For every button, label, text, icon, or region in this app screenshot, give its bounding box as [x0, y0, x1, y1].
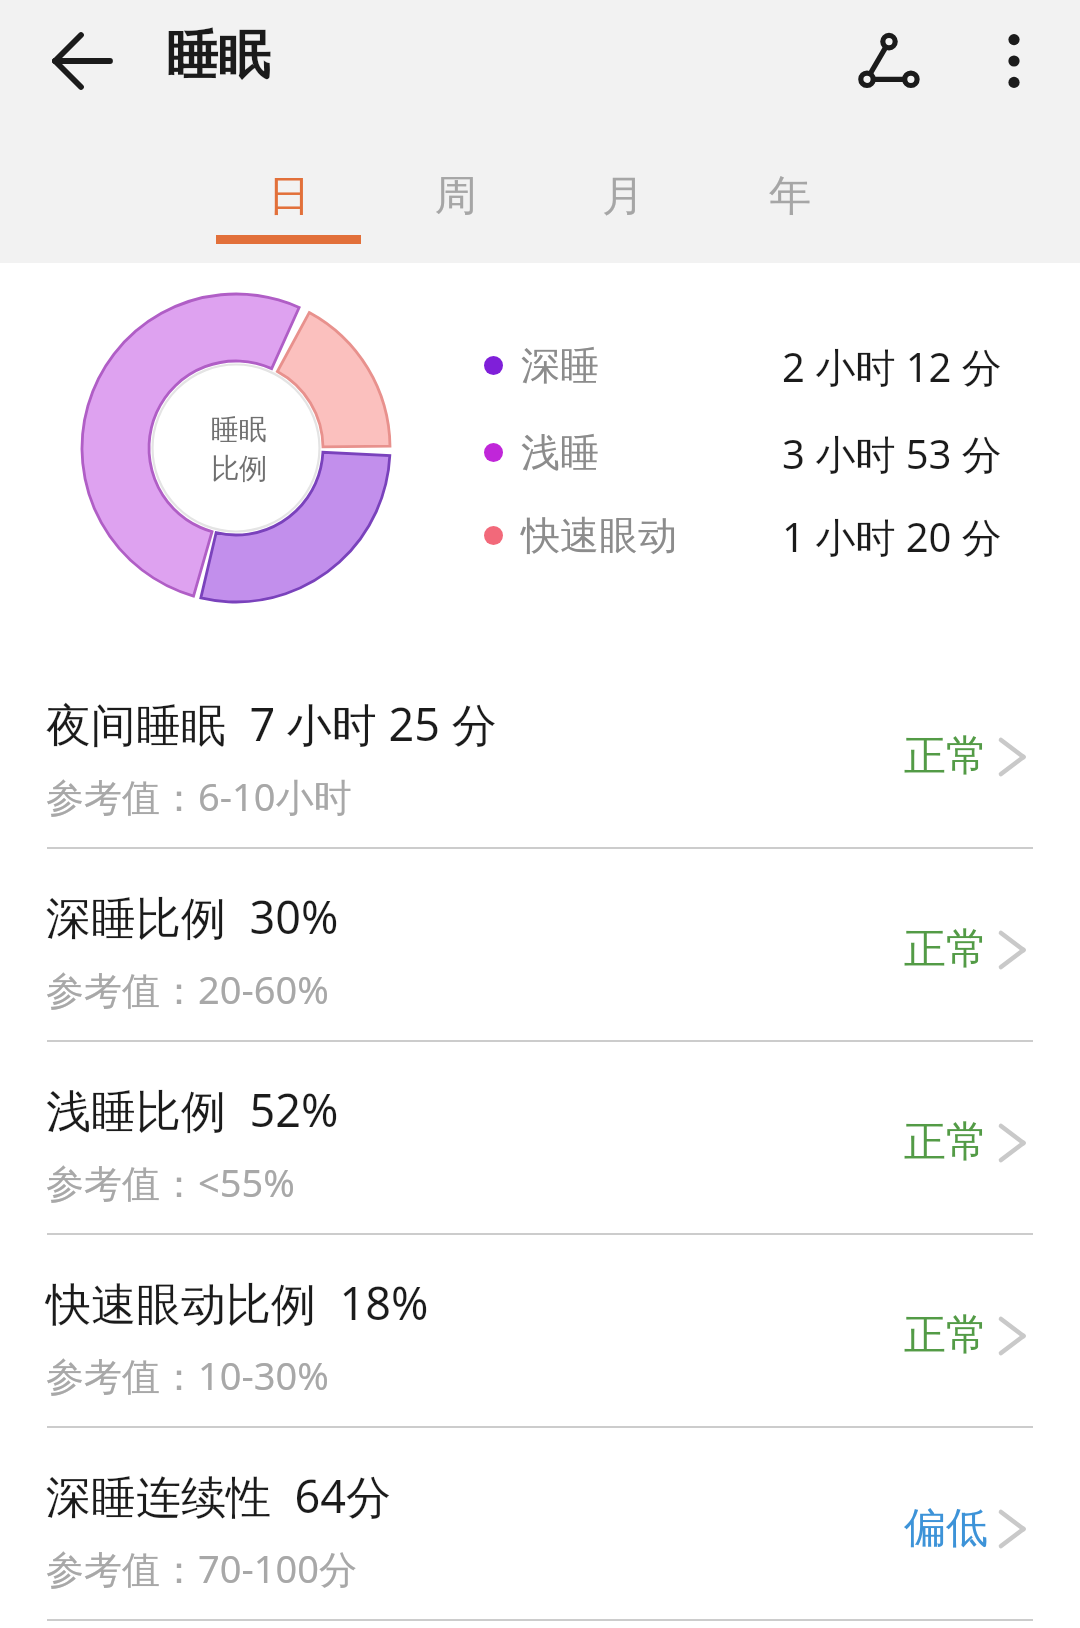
staticText: 正常 [904, 923, 988, 976]
staticText: 睡眠 [211, 412, 267, 447]
button[interactable]: Share [835, 9, 939, 113]
staticText: 3 小时 53 分 [782, 426, 1002, 481]
staticText: 浅睡比例 52% [46, 1079, 339, 1140]
staticText: 快速眼动比例 18% [46, 1272, 429, 1333]
button[interactable]: 深睡比例 30% [0, 849, 1080, 1042]
button[interactable]: 日 [205, 122, 372, 263]
button[interactable]: 周 [372, 122, 539, 263]
staticText: 深睡 [521, 341, 599, 390]
button[interactable]: Back [30, 9, 134, 113]
staticText: 睡眠 [166, 23, 270, 89]
button[interactable]: 月 [539, 122, 706, 263]
staticText: 年 [769, 170, 811, 223]
staticText: 偏低 [904, 1502, 988, 1555]
staticText: 周 [435, 170, 477, 223]
button[interactable]: 快速眼动比例 18% [0, 1235, 1080, 1428]
staticText: 参考值：10-30% [46, 1349, 329, 1401]
staticText: 月 [602, 170, 644, 223]
button[interactable]: 深睡连续性 64分 [0, 1428, 1080, 1621]
staticText: 正常 [904, 730, 988, 783]
staticText: 参考值：20-60% [46, 963, 329, 1015]
staticText: 正常 [904, 1309, 988, 1362]
staticText: 快速眼动 [521, 511, 677, 560]
staticText: 夜间睡眠 7 小时 25 分 [46, 693, 497, 754]
staticText: 浅睡 [521, 428, 599, 477]
staticText: 深睡比例 30% [46, 886, 339, 947]
staticText: 2 小时 12 分 [782, 339, 1002, 394]
button[interactable]: 夜间睡眠 7 小时 25 分 [0, 656, 1080, 849]
staticText: 参考值：70-100分 [46, 1542, 357, 1594]
button[interactable]: More options [962, 9, 1066, 113]
staticText: 日 [268, 170, 310, 223]
button[interactable]: 年 [706, 122, 873, 263]
staticText: 参考值：6-10小时 [46, 770, 352, 822]
staticText: 深睡连续性 64分 [46, 1465, 391, 1526]
staticText: 比例 [211, 451, 267, 486]
staticText: 正常 [904, 1116, 988, 1169]
staticText: 参考值：<55% [46, 1156, 295, 1208]
button[interactable]: 浅睡比例 52% [0, 1042, 1080, 1235]
staticText: 1 小时 20 分 [782, 509, 1002, 564]
